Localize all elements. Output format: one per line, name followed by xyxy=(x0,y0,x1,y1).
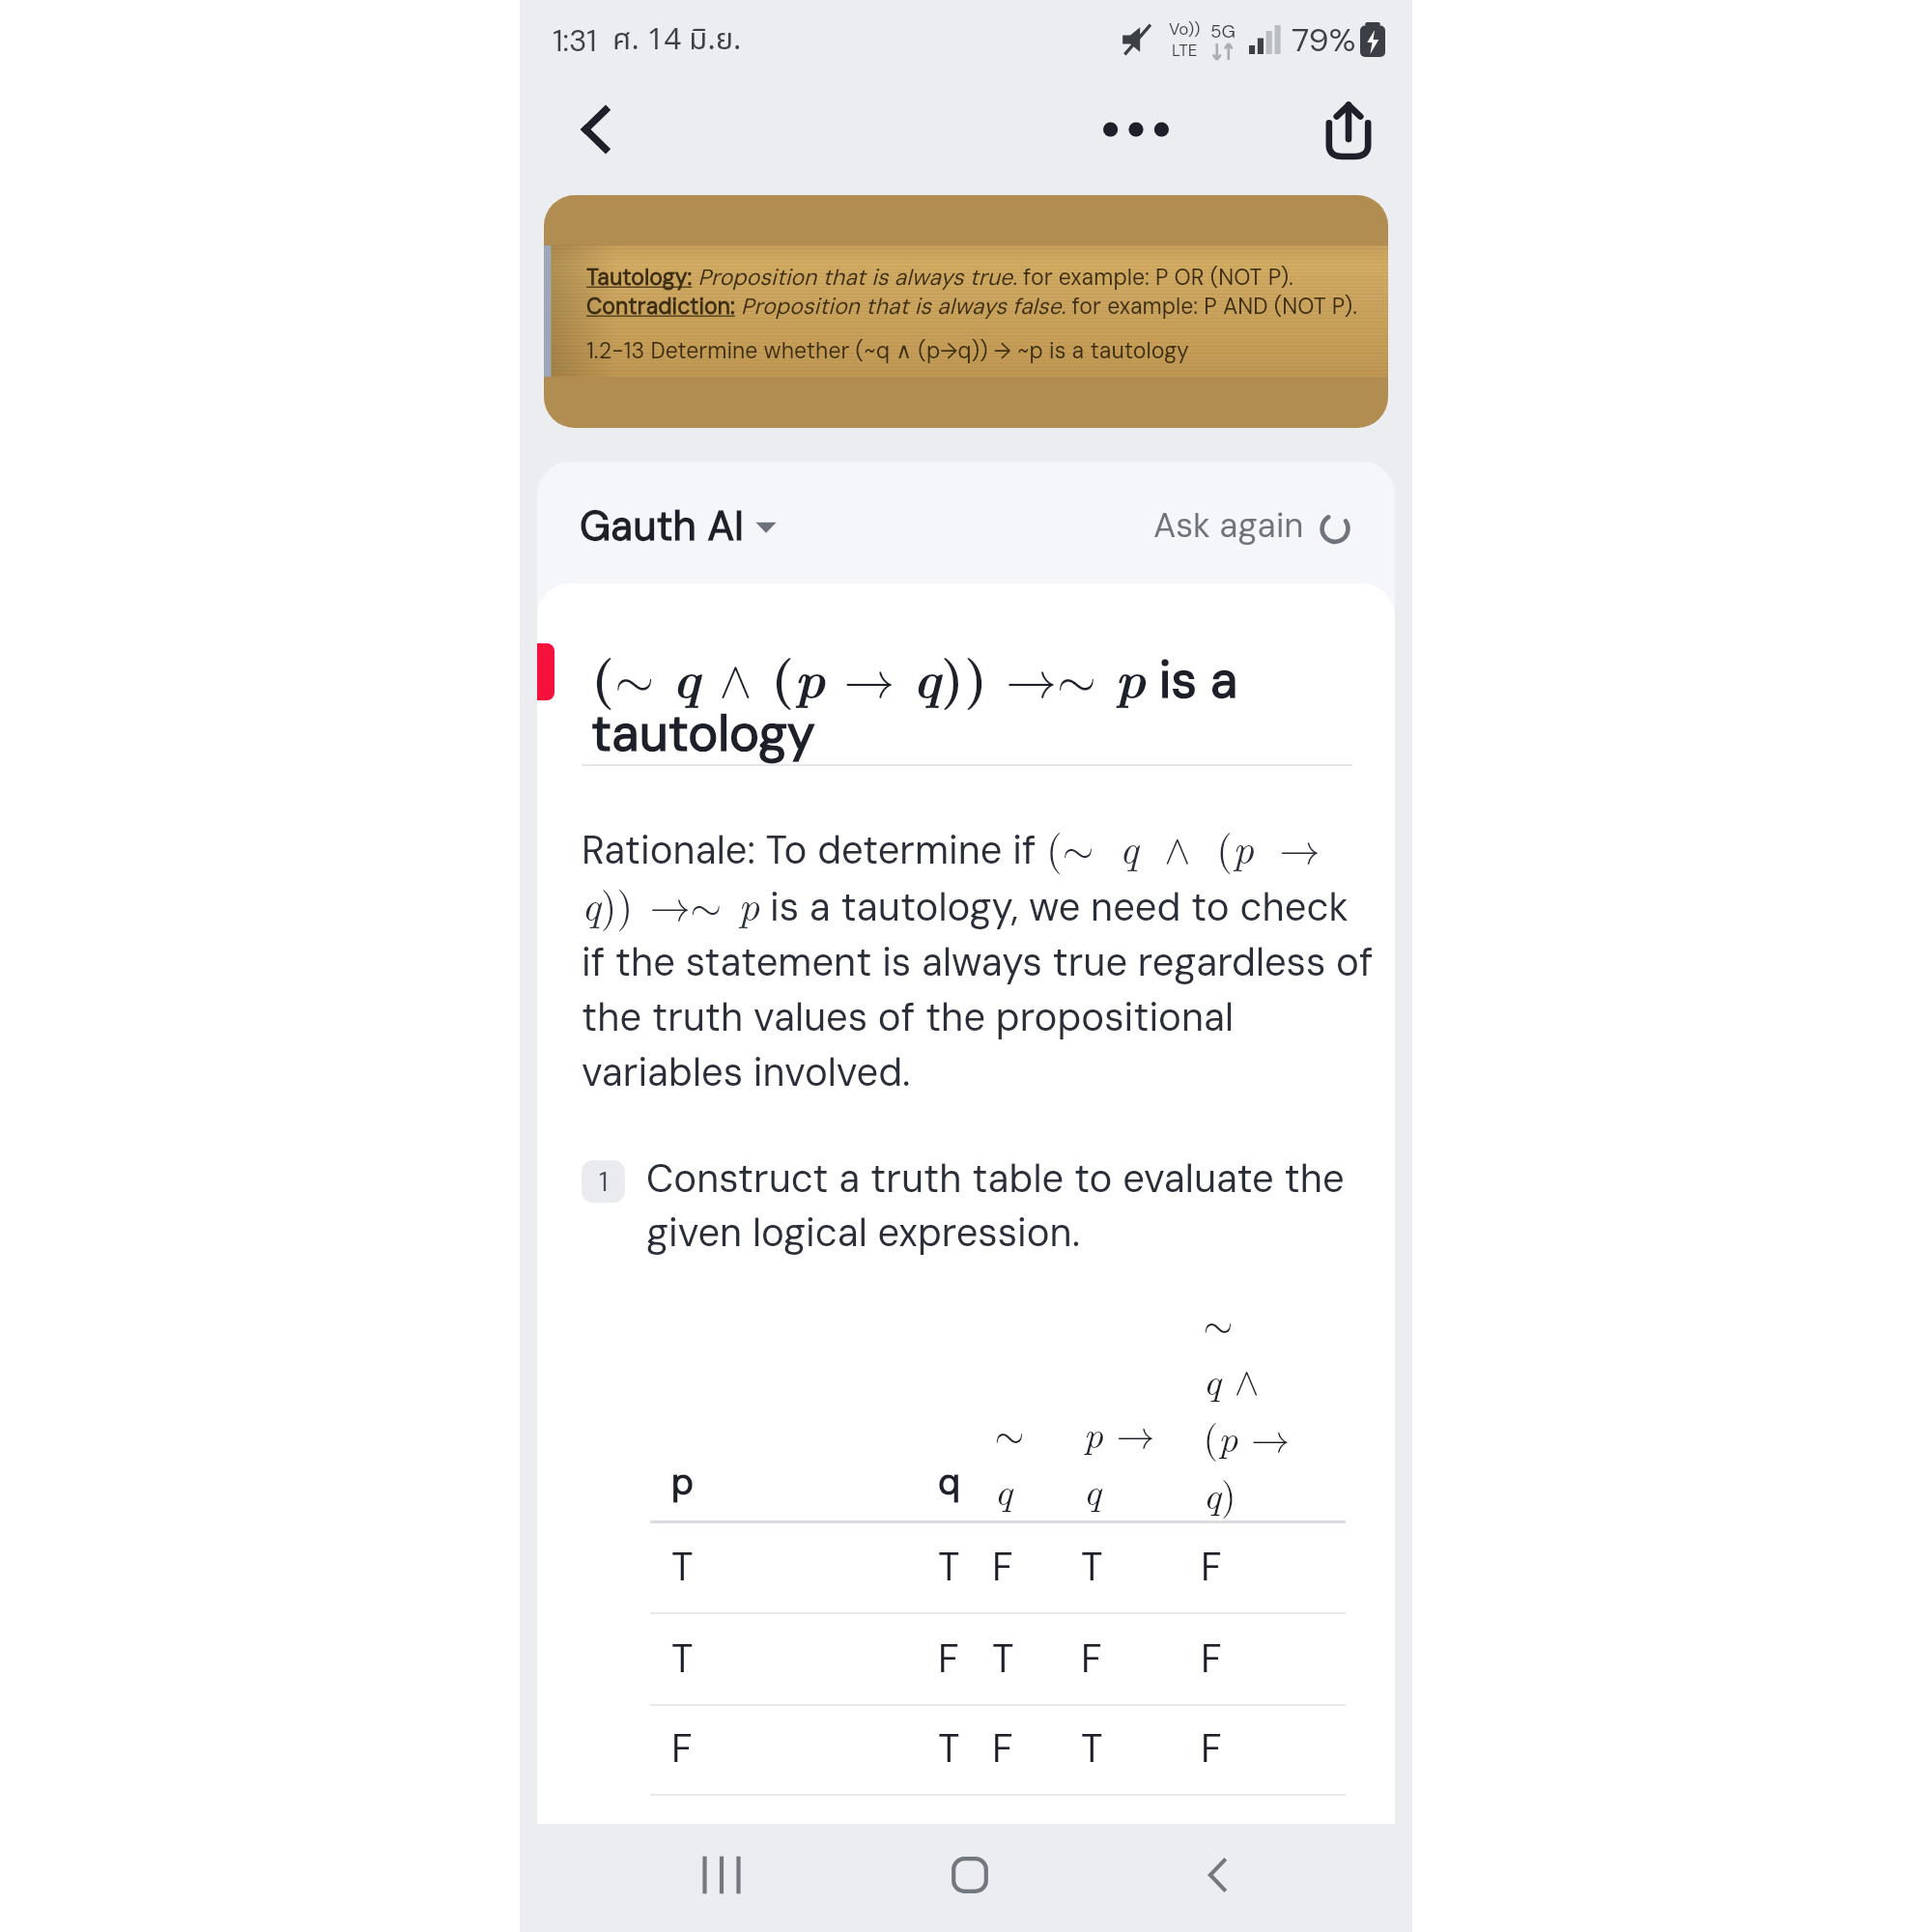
staticText: Tautology: Proposition that is always tr… xyxy=(586,263,1293,292)
button[interactable]: Back xyxy=(1177,1833,1260,1917)
staticText: F xyxy=(1201,1634,1222,1684)
button[interactable]: Gauth AI, change model xyxy=(580,486,777,566)
staticText: T xyxy=(1081,1542,1103,1592)
staticText: T xyxy=(1081,1723,1103,1774)
staticText: F xyxy=(938,1634,959,1684)
button[interactable]: Home xyxy=(928,1833,1011,1917)
staticText: 5G xyxy=(1210,19,1236,43)
staticText: q xyxy=(938,1459,960,1505)
button[interactable]: Back xyxy=(560,95,630,164)
staticText: (p → (q xyxy=(1068,1405,1155,1517)
staticText: F xyxy=(1081,1634,1102,1684)
staticText: (∼ (q ∧ ((p → (q) xyxy=(1188,1317,1290,1520)
staticText: F xyxy=(1201,1723,1222,1774)
button[interactable]: Question photo xyxy=(544,195,1388,428)
staticText: F xyxy=(1201,1542,1222,1592)
staticText: F xyxy=(992,1723,1013,1774)
staticText: F xyxy=(992,1542,1013,1592)
staticText: p xyxy=(671,1459,695,1505)
staticText: T xyxy=(671,1634,694,1684)
staticText: (∼ (q xyxy=(980,1405,1025,1517)
button[interactable]: Share xyxy=(1314,95,1383,164)
staticText: Contradiction: Proposition that is alway… xyxy=(586,292,1357,321)
staticText: LTE xyxy=(1172,40,1198,61)
staticText: F xyxy=(671,1723,693,1774)
staticText: T xyxy=(671,1542,694,1592)
staticText: 1.2-13 Determine whether (~q ∧ (p→q)) → … xyxy=(586,336,1189,365)
staticText: Vo)) xyxy=(1169,18,1201,40)
staticText: T xyxy=(938,1723,960,1774)
button[interactable]: Ask again xyxy=(1153,490,1352,561)
staticText: (∼ q ∧ (p → q)) →∼ p is a xyxy=(591,638,1238,714)
staticText: Rationale: To determine if (∼ q ∧ (p → q… xyxy=(582,817,1378,1098)
staticText: Gauth AI xyxy=(580,499,745,553)
staticText: Ask again xyxy=(1153,503,1304,548)
staticText: T xyxy=(992,1634,1014,1684)
staticText: Construct a truth table to evaluate the … xyxy=(646,1153,1352,1259)
staticText: 79% xyxy=(1292,18,1356,61)
button[interactable]: Recent apps xyxy=(680,1833,763,1917)
staticText: ศ. 14 มิ.ย. xyxy=(612,17,742,63)
button[interactable]: More options xyxy=(1090,95,1182,164)
staticText: 1 xyxy=(599,1165,609,1199)
staticText: tautology xyxy=(591,700,815,766)
staticText: 1:31 xyxy=(553,21,597,60)
staticText: T xyxy=(938,1542,960,1592)
